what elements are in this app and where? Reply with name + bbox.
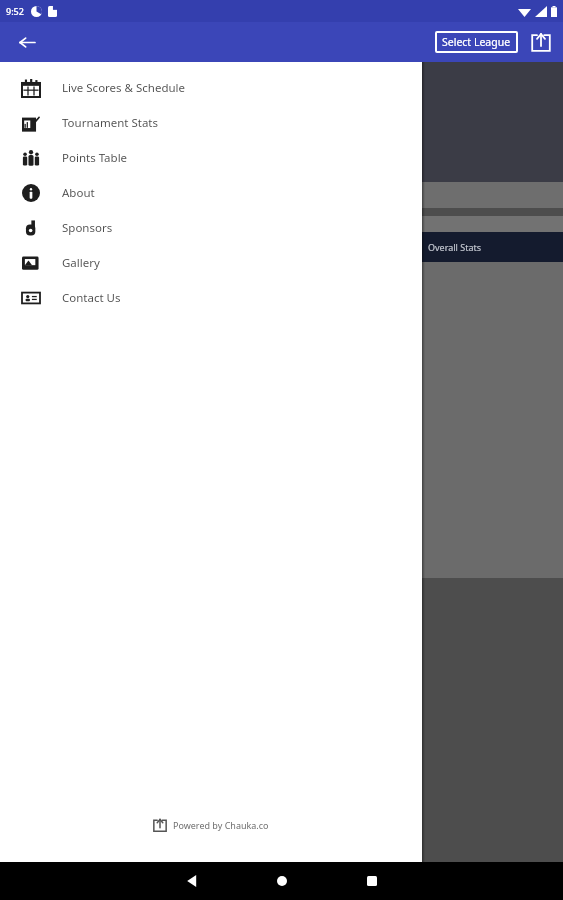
button[interactable]: Sponsors [0,210,422,245]
staticText: Live Scores & Schedule [62,80,186,96]
staticText: Points Table [62,150,128,166]
button[interactable]: Live Scores & Schedule [0,70,422,105]
staticText: Sponsors [62,220,113,236]
button[interactable]: Share [527,28,555,56]
button[interactable]: Points Table [0,140,422,175]
button[interactable]: About [0,175,422,210]
staticText: Overall Stats [428,241,482,253]
staticText: Select League [442,35,511,49]
button[interactable]: Back [12,28,40,56]
button[interactable]: Contact Us [0,280,422,315]
button[interactable]: Select League [435,31,518,53]
button[interactable]: Gallery [0,245,422,280]
button[interactable]: Recent apps [348,862,396,900]
button[interactable]: Home [258,862,306,900]
staticText: About [62,185,95,201]
button[interactable]: Back [168,862,216,900]
button[interactable]: Tournament Stats [0,105,422,140]
staticText: Tournament Stats [62,115,159,131]
staticText: Contact Us [62,290,121,306]
staticText: Powered by Chauka.co [173,819,269,831]
staticText: 9:52 [6,5,24,17]
staticText: Gallery [62,255,100,271]
